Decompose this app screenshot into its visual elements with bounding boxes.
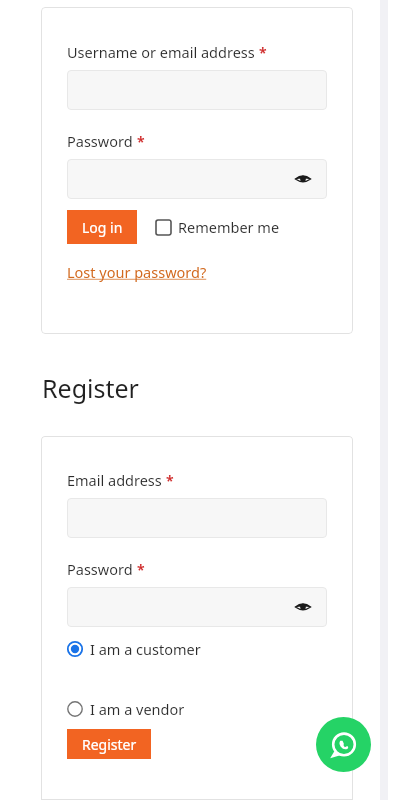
button[interactable]: Show password <box>67 587 327 627</box>
staticText: Log in <box>82 218 123 237</box>
button[interactable]: Show password <box>293 597 313 617</box>
button[interactable]: I am a vendor <box>67 696 327 722</box>
button[interactable]: I am a customer <box>67 636 327 662</box>
staticText: Password <box>67 131 133 151</box>
button[interactable]: Remember me <box>156 210 280 244</box>
staticText: * <box>259 43 267 62</box>
button[interactable]: Show password <box>67 159 327 199</box>
button[interactable]: Show password <box>293 169 313 189</box>
staticText: * <box>137 132 145 151</box>
staticText: Username or email address <box>67 42 255 62</box>
staticText: I am a customer <box>90 639 201 659</box>
staticText: Remember me <box>178 217 280 237</box>
staticText: Register <box>82 735 137 754</box>
button[interactable] <box>67 70 327 110</box>
staticText: I am a vendor <box>90 699 185 719</box>
button[interactable]: Chat on WhatsApp <box>316 717 371 772</box>
staticText: * <box>166 471 174 490</box>
staticText: Password <box>67 559 133 579</box>
button[interactable]: Log in <box>67 210 137 244</box>
staticText: Email address <box>67 470 162 490</box>
staticText: * <box>137 560 145 579</box>
button[interactable]: Register <box>67 729 151 759</box>
staticText: Lost your password? <box>67 262 207 282</box>
staticText: Register <box>42 371 139 405</box>
button[interactable]: Lost your password? <box>67 262 207 282</box>
button[interactable] <box>67 498 327 538</box>
